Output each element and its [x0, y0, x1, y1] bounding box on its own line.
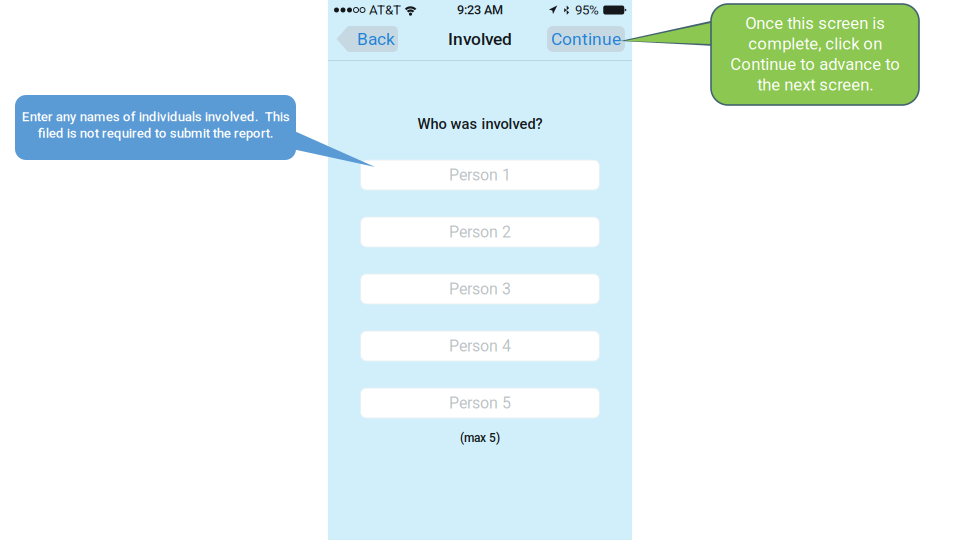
- button[interactable]: Person 4: [360, 331, 599, 361]
- staticText: Person 5: [449, 394, 511, 412]
- staticText: Person 3: [449, 280, 511, 298]
- staticText: Who was involved?: [417, 115, 542, 133]
- staticText: Person 1: [449, 166, 511, 184]
- staticText: 95%: [575, 2, 599, 18]
- staticText: (max 5): [460, 431, 500, 445]
- button[interactable]: Continue: [547, 26, 625, 52]
- staticText: 9:23 AM: [457, 3, 503, 17]
- button[interactable]: Person 1: [360, 160, 599, 190]
- staticText: Back: [357, 29, 395, 49]
- button[interactable]: Person 3: [360, 274, 599, 304]
- staticText: Person 4: [449, 337, 511, 355]
- button[interactable]: Back: [336, 26, 398, 52]
- staticText: Continue: [551, 29, 621, 49]
- button[interactable]: Person 5: [360, 388, 599, 418]
- staticText: Involved: [448, 29, 512, 49]
- button[interactable]: Person 2: [360, 217, 599, 247]
- staticText: Person 2: [449, 223, 511, 241]
- staticText: Once this screen is complete, click on C…: [730, 13, 900, 94]
- staticText: AT&T: [369, 2, 401, 18]
- staticText: Enter any names of individuals involved.…: [21, 109, 289, 141]
